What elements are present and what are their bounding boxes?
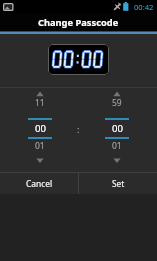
button[interactable] bbox=[34, 157, 46, 164]
staticText: 00 bbox=[112, 122, 123, 135]
staticText: 59 bbox=[112, 97, 122, 109]
staticText: 01 bbox=[35, 140, 45, 152]
staticText: 01 bbox=[112, 140, 122, 152]
staticText: 11 bbox=[35, 97, 45, 109]
staticText: : bbox=[77, 123, 80, 135]
button[interactable]: Set bbox=[79, 173, 157, 194]
button[interactable] bbox=[111, 91, 123, 98]
staticText: Change Passcode bbox=[38, 16, 119, 29]
button[interactable]: 00 bbox=[101, 120, 133, 137]
staticText: 00:42 bbox=[134, 2, 154, 12]
button[interactable] bbox=[111, 157, 123, 164]
staticText: 00 bbox=[35, 122, 46, 135]
staticText: Set bbox=[112, 178, 125, 189]
staticText: Cancel bbox=[26, 178, 53, 189]
button[interactable]: 00 bbox=[24, 120, 56, 137]
button[interactable] bbox=[34, 91, 46, 98]
button[interactable]: Cancel bbox=[0, 173, 78, 194]
